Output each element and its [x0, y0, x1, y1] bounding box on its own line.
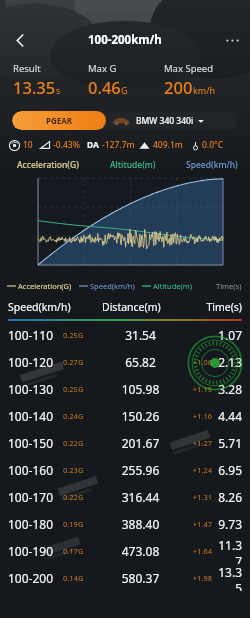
staticText: +1.47: [179, 519, 212, 529]
staticText: 388.40: [102, 516, 179, 532]
other: GPS signal: [9, 140, 20, 151]
staticText: 201.67: [102, 435, 179, 451]
staticText: G: [121, 84, 128, 96]
button[interactable]: 100-130: [0, 375, 250, 402]
staticText: 9.73: [212, 516, 242, 532]
staticText: 100-160: [8, 462, 54, 478]
staticText: Speed(km/h): [186, 159, 238, 171]
staticText: Acceleration(G): [18, 281, 72, 291]
staticText: 0.24G: [63, 411, 84, 421]
staticText: km/h: [193, 84, 216, 96]
staticText: 100-130: [8, 381, 54, 397]
staticText: 13.35: [212, 564, 242, 591]
staticText: 100-180: [8, 516, 54, 532]
staticText: 3.28: [212, 381, 242, 397]
staticText: Acceleration(G): [17, 159, 79, 171]
button[interactable]: More options: [219, 27, 245, 53]
staticText: 100-150: [8, 435, 54, 451]
staticText: 150.26: [102, 408, 179, 424]
staticText: 409.1m: [153, 139, 183, 151]
button[interactable]: 100-190: [0, 537, 250, 564]
staticText: +1.06: [179, 357, 212, 367]
staticText: +1.27: [179, 438, 212, 448]
staticText: 0.22G: [63, 438, 84, 448]
staticText: 100-110: [8, 327, 54, 343]
staticText: 5.71: [212, 435, 242, 451]
button[interactable]: 100-120: [0, 348, 250, 375]
staticText: 0.19G: [63, 519, 84, 529]
staticText: 100-190: [8, 543, 54, 559]
staticText: +1.24: [179, 465, 212, 475]
staticText: 105.98: [102, 381, 179, 397]
staticText: BMW 340 340i: [136, 115, 194, 127]
staticText: 100-200km/h: [88, 32, 162, 48]
button[interactable]: PGEAR: [12, 111, 238, 130]
staticText: 0.25G: [63, 384, 84, 394]
staticText: 0.27G: [63, 357, 84, 367]
staticText: 0.22G: [63, 492, 84, 502]
staticText: Time(s): [216, 281, 242, 291]
other: Altitude: [139, 140, 150, 151]
button[interactable]: 100-150: [0, 429, 250, 456]
button[interactable]: 100-170: [0, 483, 250, 510]
other: Temperature: [191, 141, 200, 150]
staticText: -127.7m: [102, 139, 135, 151]
staticText: 200: [164, 76, 193, 98]
staticText: 473.08: [102, 543, 179, 559]
staticText: Max Speed: [164, 62, 214, 75]
staticText: 2.13: [212, 354, 242, 370]
staticText: Altitude(m): [153, 281, 193, 291]
staticText: Distance(m): [102, 300, 186, 314]
staticText: Time(s): [186, 300, 242, 314]
staticText: 10: [23, 139, 33, 151]
staticText: 580.37: [102, 570, 179, 586]
staticText: 8.26: [212, 489, 242, 505]
staticText: 0.25G: [63, 330, 84, 340]
staticText: 100-200: [8, 570, 54, 586]
staticText: 1.07: [212, 327, 242, 343]
staticText: 11.37: [212, 537, 242, 564]
staticText: 316.44: [102, 489, 179, 505]
staticText: +1.64: [179, 546, 212, 556]
staticText: 4.44: [212, 408, 242, 424]
staticText: PGEAR: [46, 115, 73, 126]
button[interactable]: 100-160: [0, 456, 250, 483]
other: Gradient: [40, 140, 50, 150]
staticText: +1.16: [179, 411, 212, 421]
staticText: 0.0°C: [202, 139, 224, 151]
staticText: 0.23G: [63, 465, 84, 475]
staticText: s: [56, 84, 61, 96]
button[interactable]: 100-110: [0, 321, 250, 348]
staticText: 255.96: [102, 462, 179, 478]
button[interactable]: Back: [6, 27, 34, 53]
staticText: +1.31: [179, 492, 212, 502]
staticText: 100-170: [8, 489, 54, 505]
staticText: 0.17G: [63, 546, 84, 556]
staticText: 0.14G: [63, 573, 84, 583]
staticText: 13.35: [13, 76, 56, 98]
button[interactable]: 100-140: [0, 402, 250, 429]
staticText: 31.54: [102, 327, 179, 343]
button[interactable]: 100-180: [0, 510, 250, 537]
staticText: DA: [87, 139, 99, 151]
staticText: 100-120: [8, 354, 54, 370]
staticText: Altitude(m): [110, 159, 156, 171]
staticText: 0.46: [88, 76, 121, 98]
staticText: +1.15: [179, 384, 212, 394]
staticText: -0.43%: [53, 139, 80, 151]
staticText: +1.98: [179, 573, 212, 583]
staticText: Max G: [88, 62, 117, 75]
staticText: Speed(km/h): [90, 281, 135, 291]
staticText: 6.95: [212, 462, 242, 478]
staticText: [179, 330, 212, 340]
staticText: Speed(km/h): [8, 300, 102, 314]
staticText: 100-140: [8, 408, 54, 424]
staticText: Result: [13, 62, 41, 75]
button[interactable]: 100-200: [0, 564, 250, 591]
staticText: 65.82: [102, 354, 179, 370]
